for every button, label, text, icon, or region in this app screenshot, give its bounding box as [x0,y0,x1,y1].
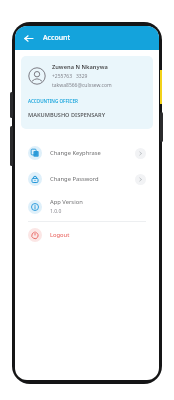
button[interactable]: Change Password [21,166,153,192]
staticText: Change Keyphrase [50,149,101,157]
button[interactable]: Change Keyphrase [21,140,153,166]
staticText: Account [43,33,71,43]
staticText: ACCOUNTING OFFICER [28,98,78,104]
staticText: +255763 3329 [52,73,88,80]
button[interactable]: Back [21,31,35,45]
staticText: MAKUMBUSHO DISPENSARY [28,111,106,119]
staticText: 1.0.0 [50,208,62,215]
button[interactable]: App Version [21,192,153,221]
button[interactable]: Logout [21,222,153,248]
staticText: App Version [50,198,83,206]
staticText: takwa8566@culxsew.com [52,82,112,89]
staticText: Zuwena N Nkanywa [52,63,108,71]
staticText: Change Password [50,175,99,183]
staticText: Logout [50,231,70,239]
